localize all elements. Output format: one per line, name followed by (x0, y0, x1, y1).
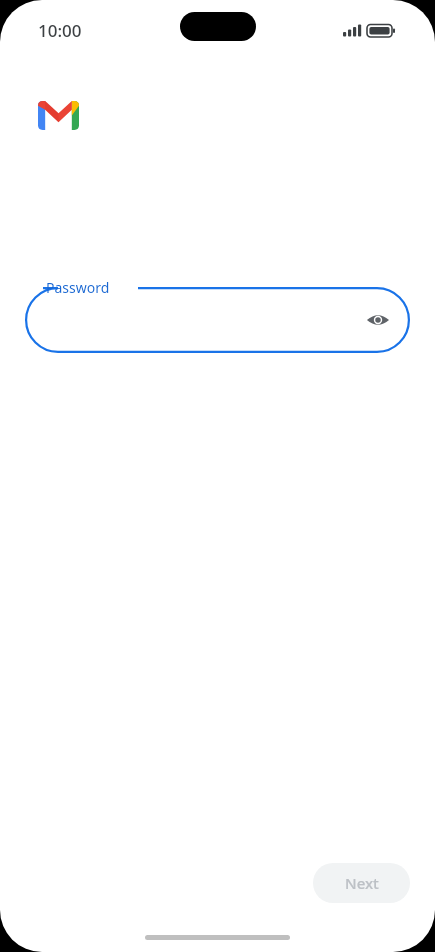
button[interactable]: Password (25, 287, 410, 353)
staticText: 10:00 (38, 19, 82, 42)
staticText: Next (345, 873, 379, 893)
staticText: Password (46, 278, 110, 297)
button[interactable]: Next (313, 863, 410, 903)
button[interactable]: Show password (358, 300, 398, 340)
